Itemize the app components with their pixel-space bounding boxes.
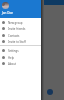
button[interactable]: About (0, 60, 41, 67)
button[interactable]: Help (0, 54, 41, 61)
button[interactable]: New conversation (47, 89, 53, 95)
staticText: Settings (8, 49, 19, 53)
button[interactable]: Invite friends (0, 25, 41, 32)
button[interactable]: Contacts (0, 32, 41, 39)
staticText: Help (8, 56, 15, 60)
staticText: Contacts (8, 34, 20, 38)
staticText: About (8, 62, 16, 66)
button[interactable]: Settings (0, 47, 41, 54)
button[interactable]: New group (0, 19, 41, 26)
button[interactable]: Invite to Staff (0, 38, 41, 45)
staticText: Jan Doe (2, 11, 13, 15)
staticText: New group (8, 21, 23, 25)
staticText: Invite to Staff (8, 40, 26, 44)
staticText: Invite friends (8, 27, 26, 31)
